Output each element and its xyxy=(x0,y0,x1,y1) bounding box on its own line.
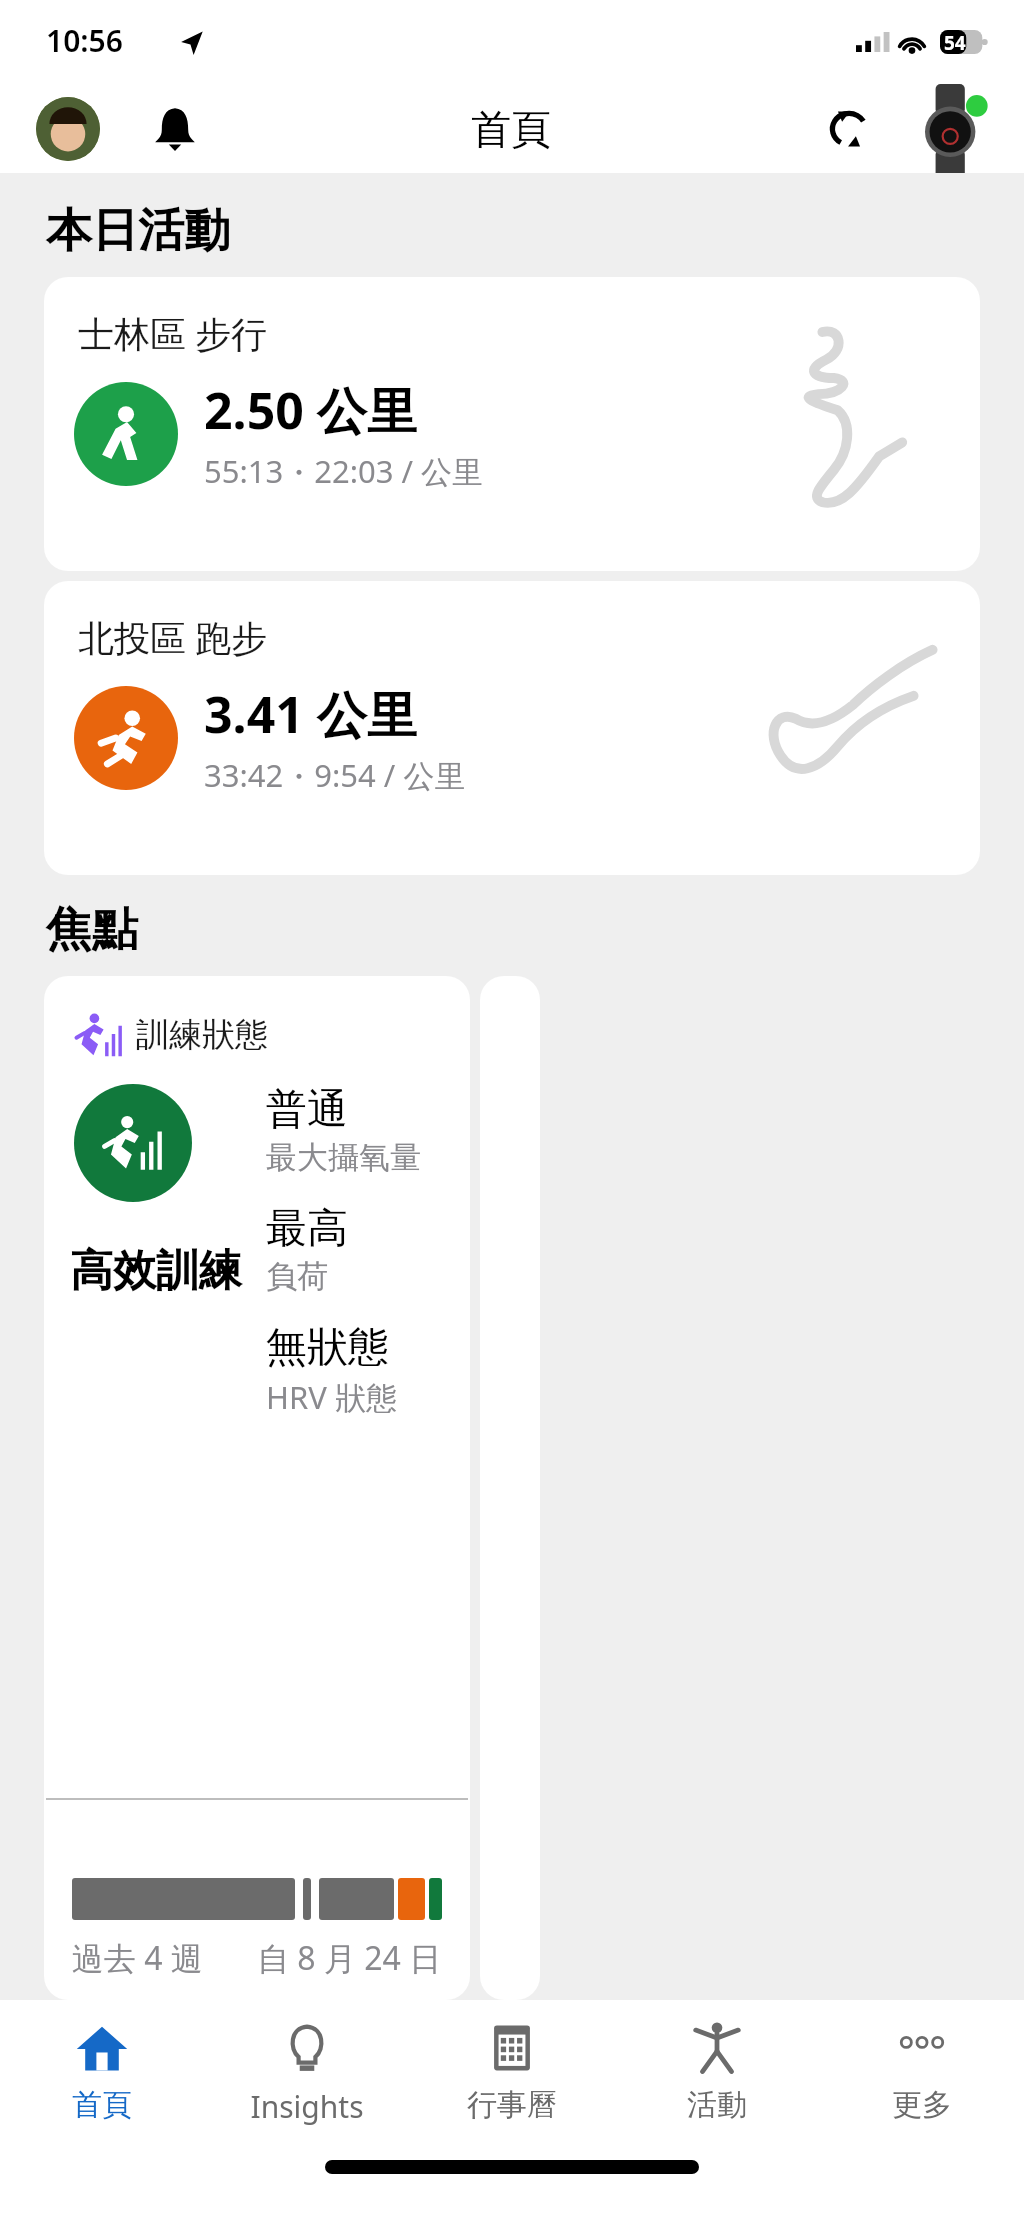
staticText: 3.41 公里 xyxy=(204,680,417,748)
button[interactable]: Sync xyxy=(816,96,882,162)
staticText: 首頁 xyxy=(72,2086,132,2124)
staticText: HRV 狀態 xyxy=(266,1376,397,1418)
button[interactable]: 更多 xyxy=(819,2000,1024,2134)
staticText: 行事曆 xyxy=(467,2086,557,2124)
button[interactable]: 北投區 跑步 xyxy=(44,581,980,875)
button[interactable]: 首頁 xyxy=(0,2000,204,2134)
staticText: 訓練狀態 xyxy=(136,1014,268,1056)
staticText: 最高 xyxy=(266,1203,348,1255)
staticText: 北投區 跑步 xyxy=(78,613,268,662)
button[interactable]: Insights xyxy=(204,2000,409,2134)
staticText: 無狀態 xyxy=(266,1322,389,1374)
button[interactable]: Profile xyxy=(36,97,100,161)
staticText: 首頁 xyxy=(471,104,551,154)
staticText: 33:42・9:54 / 公里 xyxy=(204,754,466,796)
button[interactable]: 行事曆 xyxy=(409,2000,614,2134)
button[interactable]: 訓練狀態 xyxy=(44,976,470,2000)
staticText: 士林區 步行 xyxy=(78,309,268,358)
staticText: Insights xyxy=(250,2086,364,2127)
staticText: 本日活動 xyxy=(46,202,230,260)
staticText: 55:13・22:03 / 公里 xyxy=(204,450,484,492)
staticText: 2.50 公里 xyxy=(204,376,417,444)
staticText: 活動 xyxy=(687,2086,747,2124)
staticText: 更多 xyxy=(892,2086,952,2124)
staticText: 54 xyxy=(944,30,966,54)
staticText: 高效訓練 xyxy=(70,1244,242,1298)
button[interactable]: 士林區 步行 xyxy=(44,277,980,571)
staticText: 焦點 xyxy=(46,901,138,959)
button[interactable]: 活動 xyxy=(614,2000,819,2134)
button[interactable]: Notifications xyxy=(144,98,206,160)
staticText: 負荷 xyxy=(266,1257,328,1296)
staticText: 自 8 月 24 日 xyxy=(257,1936,442,1980)
staticText: 最大攝氧量 xyxy=(266,1138,421,1177)
staticText: 普通 xyxy=(266,1084,348,1136)
staticText: 10:56 xyxy=(46,20,123,61)
button[interactable]: Device xyxy=(918,94,988,164)
staticText: 過去 4 週 xyxy=(72,1936,203,1980)
